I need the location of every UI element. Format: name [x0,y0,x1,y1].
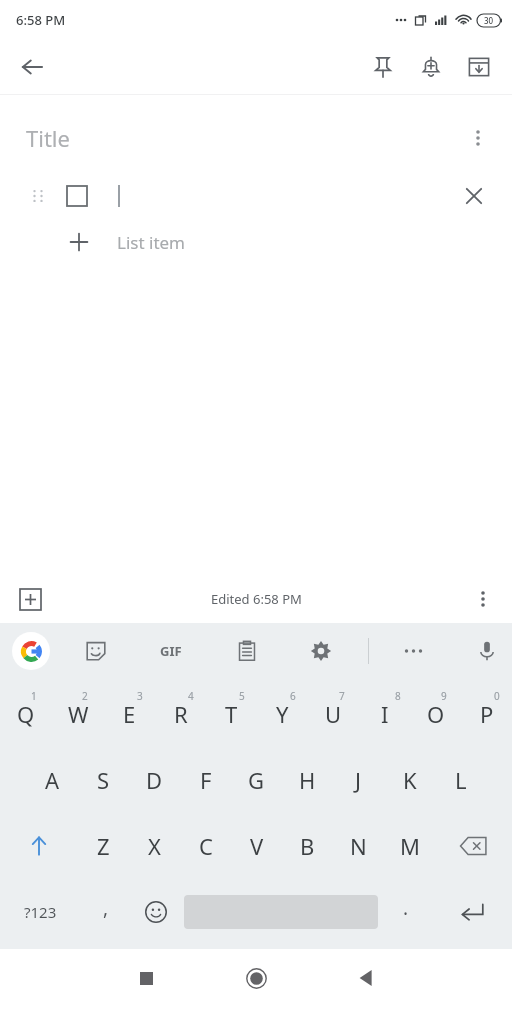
button[interactable]: More options [456,116,500,160]
button[interactable]: Delete item [454,176,494,216]
button[interactable]: C [180,813,231,879]
button[interactable]: Shift [0,813,78,879]
staticText: G [248,765,265,795]
button[interactable]: Pin [359,43,407,91]
staticText: 6:58 PM [16,11,66,29]
button[interactable]: Clipboard [225,629,269,673]
button[interactable]: W [52,681,104,747]
staticText: 1 [31,689,37,703]
staticText: 2 [82,689,88,703]
staticText: D [146,765,163,795]
staticText: 7 [339,689,345,703]
staticText: N [350,831,367,861]
staticText: M [400,831,420,861]
staticText: V [250,831,264,861]
button[interactable]: F [180,747,231,813]
staticText: Edited 6:58 PM [211,590,302,608]
button[interactable]: P [461,681,512,747]
staticText: F [200,765,212,795]
button[interactable]: Back [8,43,56,91]
staticText: Q [17,699,35,729]
staticText: H [299,765,316,795]
staticText: L [455,765,467,795]
button[interactable]: Z [78,813,129,879]
staticText: C [199,831,213,861]
button[interactable]: Google search [12,632,50,670]
staticText: 6 [290,689,296,703]
staticText: Title [26,123,70,153]
button[interactable]: More options [462,578,504,620]
button[interactable]: B [282,813,333,879]
button[interactable]: Home [232,954,280,1002]
button[interactable]: S [78,747,129,813]
staticText: U [325,699,342,729]
staticText: 9 [441,689,447,703]
staticText: . [403,895,409,921]
button[interactable]: Q [0,681,52,747]
button[interactable]: U [308,681,359,747]
staticText: , [103,895,109,921]
button[interactable]: Voice input [465,629,509,673]
staticText: GIF [160,642,182,660]
staticText: 5 [239,689,245,703]
staticText: O [427,699,445,729]
button[interactable]: T [206,681,257,747]
button[interactable]: I [359,681,410,747]
staticText: 30 [484,15,494,26]
button[interactable]: Emoji [131,879,181,945]
button[interactable]: ?123 [0,879,81,945]
button[interactable]: . [381,879,431,945]
staticText: List item [117,231,185,254]
staticText: B [300,831,315,861]
staticText: ?123 [24,902,57,922]
button[interactable]: L [435,747,486,813]
staticText: S [97,765,110,795]
button[interactable]: Backspace [435,813,512,879]
button[interactable]: R [155,681,206,747]
button[interactable]: , [81,879,131,945]
button[interactable]: Recents [122,954,170,1002]
staticText: 3 [137,689,143,703]
button[interactable]: Back [342,954,390,1002]
button[interactable]: Reminder [407,43,455,91]
button[interactable]: N [333,813,384,879]
button[interactable]: J [333,747,384,813]
staticText: 4 [188,689,194,703]
staticText: T [225,699,238,729]
button[interactable]: G [231,747,282,813]
staticText: Z [97,831,110,861]
staticText: Y [276,699,289,729]
staticText: X [148,831,161,861]
button[interactable]: More [392,629,436,673]
staticText: R [174,699,188,729]
button[interactable]: List item [0,219,512,265]
button[interactable]: K [384,747,435,813]
button[interactable]: M [384,813,435,879]
button[interactable]: H [282,747,333,813]
button[interactable]: GIF [148,628,194,674]
button[interactable]: V [231,813,282,879]
staticText: J [355,765,362,795]
staticText: A [45,765,60,795]
button[interactable]: E [104,681,155,747]
button[interactable]: Y [257,681,308,747]
button[interactable]: X [129,813,180,879]
staticText: W [68,699,89,729]
button[interactable]: Add [9,578,51,620]
staticText: 0 [494,689,500,703]
staticText: I [381,699,389,729]
button[interactable]: Enter [431,879,512,945]
button[interactable]: Archive [455,43,503,91]
staticText: E [123,699,136,729]
staticText: 8 [395,689,401,703]
button[interactable]: A [27,747,78,813]
button[interactable]: D [129,747,180,813]
staticText: K [403,765,417,795]
button[interactable]: O [410,681,461,747]
staticText: P [480,699,494,729]
button[interactable]: Settings [299,629,343,673]
button[interactable]: Stickers [74,629,118,673]
